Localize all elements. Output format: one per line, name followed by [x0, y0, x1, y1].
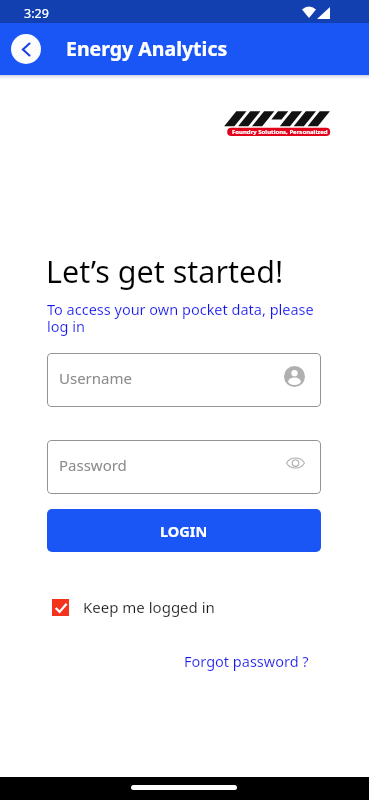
button[interactable]: Keep me logged in — [52, 597, 215, 617]
button[interactable]: Back — [11, 34, 41, 64]
staticText: Username — [59, 368, 132, 388]
staticText: Keep me logged in — [83, 597, 215, 617]
button[interactable]: LOGIN — [47, 509, 321, 552]
staticText: 3:29 — [24, 5, 49, 22]
staticText: Energy Analytics — [66, 35, 228, 62]
button[interactable]: Password — [47, 440, 321, 494]
staticText: To access your own pocket data, please l… — [47, 299, 317, 336]
staticText: Foundry Solutions, Personalized — [232, 128, 328, 136]
staticText: Password — [59, 455, 127, 475]
button[interactable]: Forgot password ? — [184, 651, 309, 671]
staticText: Let’s get started! — [46, 250, 284, 292]
staticText: LOGIN — [160, 521, 208, 541]
button[interactable]: Username — [47, 353, 321, 407]
